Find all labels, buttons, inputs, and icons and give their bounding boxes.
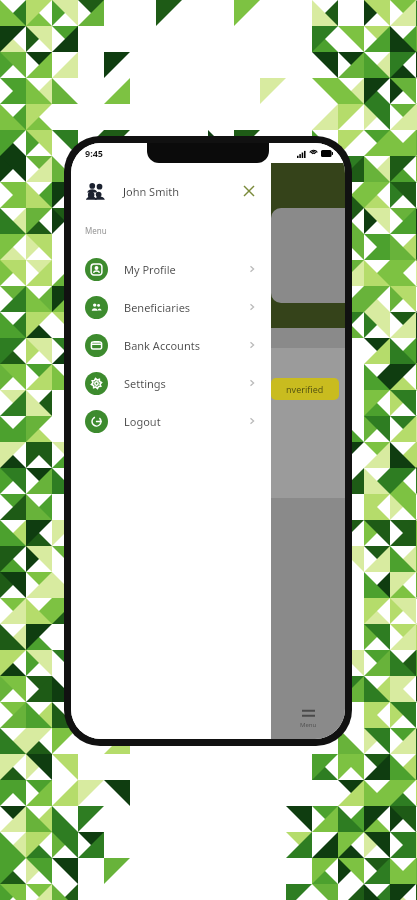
staticText: Beneficiaries [124, 300, 191, 315]
staticText: John Smith [123, 184, 180, 199]
button[interactable]: Beneficiaries [71, 288, 271, 326]
button[interactable]: Logout [71, 402, 271, 440]
staticText: Bank Accounts [124, 338, 200, 353]
staticText: My Profile [124, 262, 176, 277]
staticText: Menu [85, 225, 107, 236]
staticText: Settings [124, 376, 166, 391]
button[interactable]: Menu [300, 709, 317, 729]
staticText: 9:45 [85, 147, 103, 159]
button[interactable]: My Profile [71, 250, 271, 288]
button[interactable]: Close menu [237, 179, 261, 203]
button[interactable]: Settings [71, 364, 271, 402]
button[interactable]: Bank Accounts [71, 326, 271, 364]
button[interactable]: nverified [271, 163, 345, 739]
button[interactable]: John Smith [71, 171, 271, 211]
staticText: Menu [300, 721, 317, 729]
staticText: Logout [124, 414, 161, 429]
staticText: nverified [286, 383, 324, 395]
